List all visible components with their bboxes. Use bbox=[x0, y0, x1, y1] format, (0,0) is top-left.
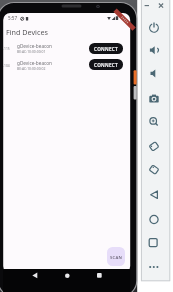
button[interactable] bbox=[92, 269, 106, 282]
button[interactable] bbox=[147, 92, 161, 106]
button[interactable] bbox=[147, 44, 161, 58]
button[interactable] bbox=[60, 269, 74, 282]
button[interactable] bbox=[147, 213, 161, 227]
button[interactable] bbox=[147, 114, 161, 128]
button[interactable] bbox=[147, 139, 161, 153]
staticText: gDevice-beacon bbox=[17, 60, 52, 66]
staticText: -115 bbox=[3, 46, 10, 50]
staticText: BE:AC:10:00:00:02 bbox=[17, 66, 46, 71]
staticText: BE:AC:10:00:00:01 bbox=[17, 49, 46, 54]
staticText: Find Devices bbox=[6, 27, 48, 37]
staticText: SCAN bbox=[110, 254, 123, 260]
button[interactable] bbox=[28, 269, 42, 282]
button[interactable] bbox=[147, 21, 161, 35]
button[interactable]: CONNECT bbox=[89, 43, 123, 54]
staticText: CONNECT bbox=[94, 62, 118, 68]
staticText: -104 bbox=[3, 63, 10, 67]
staticText: CONNECT bbox=[94, 46, 118, 52]
staticText: gDevice-beacon bbox=[17, 43, 52, 49]
button[interactable] bbox=[147, 260, 161, 274]
button[interactable] bbox=[147, 163, 161, 177]
staticText: 5:57 bbox=[8, 15, 18, 21]
button[interactable]: CONNECT bbox=[89, 59, 123, 70]
button[interactable]: SCAN bbox=[107, 247, 125, 266]
button[interactable] bbox=[147, 188, 161, 202]
button[interactable] bbox=[147, 236, 161, 250]
button[interactable] bbox=[147, 67, 161, 81]
